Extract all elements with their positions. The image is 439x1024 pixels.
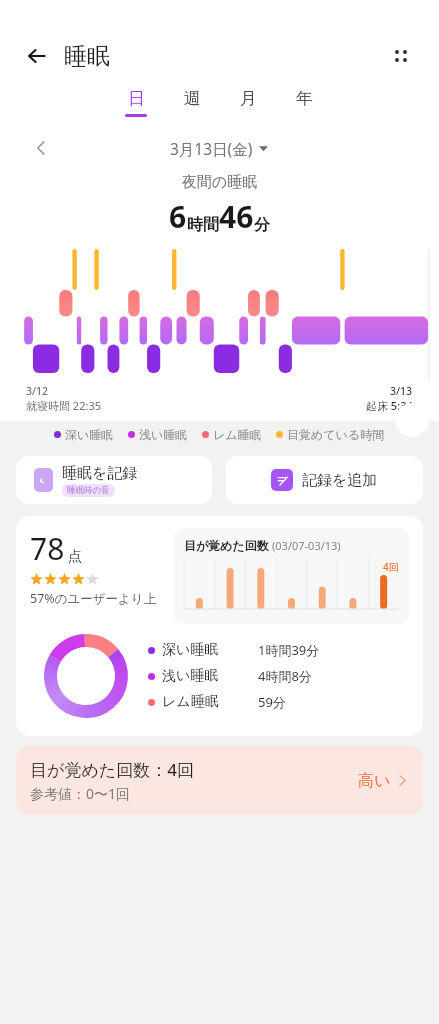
staticText: 分 [254,215,270,235]
staticText: 46 [219,196,254,237]
button[interactable]: 年 [276,88,332,117]
staticText: 深い睡眠 [65,427,114,442]
staticText: 57%のユーザーより上 [30,590,157,607]
button[interactable]: 週 [164,88,220,117]
button[interactable]: 月 [220,88,276,117]
staticText: 睡眠時の音 [67,485,110,496]
staticText: 記録を追加 [302,471,378,490]
button[interactable]: 目が覚めた回数：4回 [16,746,423,815]
staticText: 目が覚めた回数：4回 [30,758,194,781]
staticText: 年 [296,88,313,109]
staticText: 夜間の睡眠 [0,173,439,192]
staticText: 目覚めている時間 [287,427,385,442]
staticText: (03/07-03/13) [272,538,341,553]
button[interactable]: 3月13日(金) [170,138,268,159]
staticText: 3/12 [26,384,49,398]
button[interactable]: 睡眠を記録 [16,456,212,504]
staticText: 6 [169,196,187,237]
button[interactable]: 記録を追加 [226,456,423,504]
staticText: 浅い睡眠 [139,427,188,442]
staticText: レム睡眠 [162,693,258,711]
button[interactable]: More options [381,36,421,76]
button[interactable]: 日 [108,88,164,117]
staticText: レム睡眠 [213,427,262,442]
staticText: 4時間8分 [258,667,312,685]
staticText: 参考値：0〜1回 [30,784,131,803]
staticText: 就寝時間 22:35 [26,398,101,413]
staticText: 1時間39分 [258,641,320,659]
staticText: 浅い睡眠 [162,667,258,685]
staticText: 月 [240,88,257,109]
staticText: 4回 [383,560,399,574]
staticText: 目が覚めた回数 [184,538,269,553]
staticText: 週 [184,88,201,109]
staticText: 高い [358,771,391,791]
staticText: 3/13 [390,384,413,398]
button[interactable]: 78 [16,516,423,736]
staticText: 睡眠を記録 [62,464,138,483]
button[interactable]: Back [18,36,58,76]
staticText: 深い睡眠 [162,641,258,659]
staticText: 59分 [258,693,286,711]
staticText: 起床 5:34 [366,398,413,413]
staticText: 78 [30,528,65,569]
staticText: 時間 [187,215,219,235]
staticText: 日 [128,88,145,109]
staticText: 3月13日(金) [170,138,253,159]
staticText: 睡眠 [64,42,110,71]
button[interactable]: Previous day [26,133,56,163]
staticText: 点 [68,548,82,566]
